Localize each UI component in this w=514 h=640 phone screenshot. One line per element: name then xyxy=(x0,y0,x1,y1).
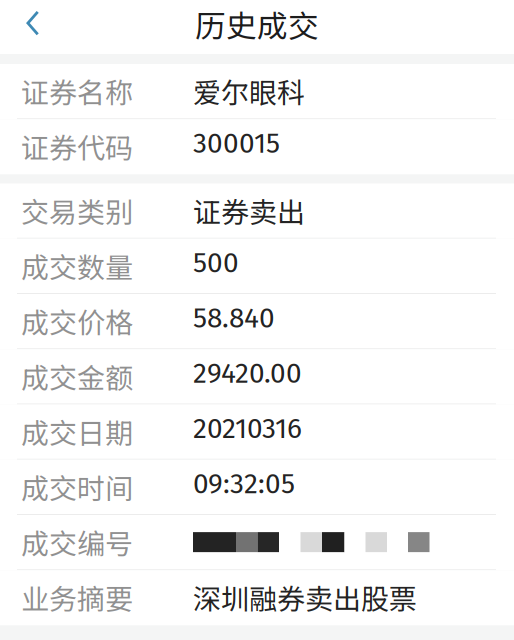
staticText: 证券代码 xyxy=(21,126,133,167)
staticText: 09:32:05 xyxy=(193,467,295,501)
staticText: 证券卖出 xyxy=(193,190,305,231)
staticText: 成交数量 xyxy=(21,246,133,286)
staticText: 历史成交 xyxy=(195,2,319,46)
staticText: 成交价格 xyxy=(21,301,133,341)
staticText: 证券名称 xyxy=(21,71,133,111)
staticText: 500 xyxy=(193,246,239,280)
staticText: 58.840 xyxy=(193,301,275,335)
staticText: 成交金额 xyxy=(21,356,133,397)
staticText: 成交编号 xyxy=(21,522,133,562)
staticText: 交易类别 xyxy=(21,190,133,231)
staticText: 成交日期 xyxy=(21,411,133,452)
staticText: 20210316 xyxy=(193,412,302,445)
staticText: 爱尔眼科 xyxy=(193,71,305,111)
staticText: 深圳融券卖出股票 xyxy=(193,577,417,618)
staticText: 成交时间 xyxy=(21,467,133,507)
staticText: 业务摘要 xyxy=(21,577,133,618)
staticText: 300015 xyxy=(193,127,280,160)
staticText: 29420.00 xyxy=(193,357,302,390)
button[interactable]: Back xyxy=(0,0,52,54)
